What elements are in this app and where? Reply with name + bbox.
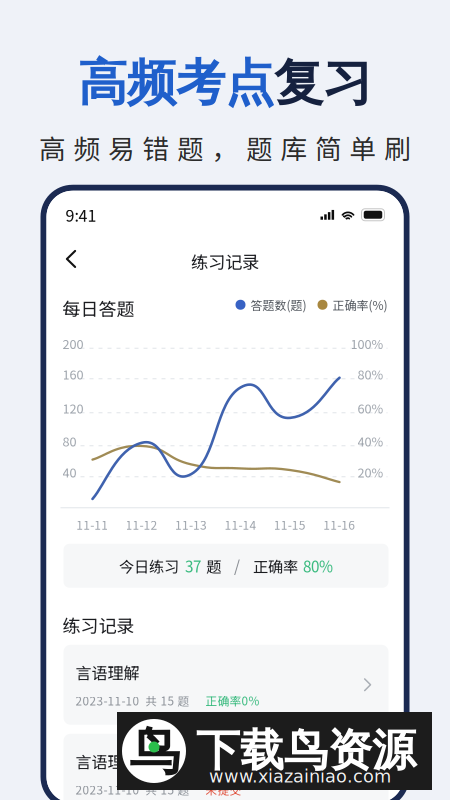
staticText: 正确率 bbox=[253, 555, 298, 577]
staticText: 11-16 bbox=[323, 516, 355, 533]
staticText: 共 15 题 bbox=[145, 692, 189, 709]
staticText: 2023-11-10 bbox=[75, 781, 139, 798]
staticText: 2023-11-10 bbox=[75, 692, 139, 709]
staticText: 未提交 bbox=[205, 781, 241, 798]
button[interactable]: 言语理解 bbox=[63, 734, 388, 800]
staticText: 今日练习 bbox=[119, 555, 179, 577]
staticText: 40 bbox=[62, 463, 76, 481]
staticText: 每日答题 bbox=[62, 295, 134, 321]
staticText: 练习记录 bbox=[62, 612, 134, 638]
staticText: 练习记录 bbox=[191, 249, 259, 274]
staticText: 9:41 bbox=[65, 203, 96, 226]
staticText: 11-11 bbox=[76, 516, 108, 533]
staticText: 正确率0% bbox=[205, 692, 259, 709]
staticText: 200 bbox=[62, 334, 83, 353]
staticText: 37 bbox=[185, 555, 201, 577]
staticText: 鸟 bbox=[129, 720, 180, 784]
staticText: 11-15 bbox=[274, 516, 306, 533]
button[interactable]: Back bbox=[55, 240, 86, 278]
staticText: 题 bbox=[206, 555, 221, 577]
staticText: 高频易错题，题库简单刷 bbox=[39, 128, 411, 167]
staticText: 100% bbox=[350, 334, 383, 353]
staticText: www.xiazainiao.com bbox=[209, 766, 391, 787]
staticText: 20% bbox=[357, 463, 383, 481]
staticText: 11-14 bbox=[224, 516, 256, 533]
staticText: 80% bbox=[303, 555, 333, 577]
staticText: 11-13 bbox=[175, 516, 207, 533]
staticText: / bbox=[234, 555, 240, 577]
staticText: 高频考点 bbox=[78, 52, 274, 114]
staticText: 复习 bbox=[274, 52, 372, 114]
staticText: 80% bbox=[357, 365, 383, 383]
staticText: 120 bbox=[62, 399, 83, 417]
staticText: 下载鸟资源 bbox=[196, 723, 416, 778]
staticText: 正确率(%) bbox=[332, 296, 387, 313]
staticText: 40% bbox=[357, 432, 383, 450]
staticText: 言语理解 bbox=[75, 750, 139, 773]
staticText: 11-12 bbox=[126, 516, 158, 533]
button[interactable]: 言语理解 bbox=[63, 645, 388, 725]
staticText: 共 15 题 bbox=[145, 781, 189, 798]
staticText: 60% bbox=[357, 399, 383, 417]
staticText: 言语理解 bbox=[75, 661, 139, 684]
staticText: 160 bbox=[62, 365, 83, 383]
staticText: 答题数(题) bbox=[250, 296, 306, 313]
staticText: 80 bbox=[62, 432, 76, 450]
